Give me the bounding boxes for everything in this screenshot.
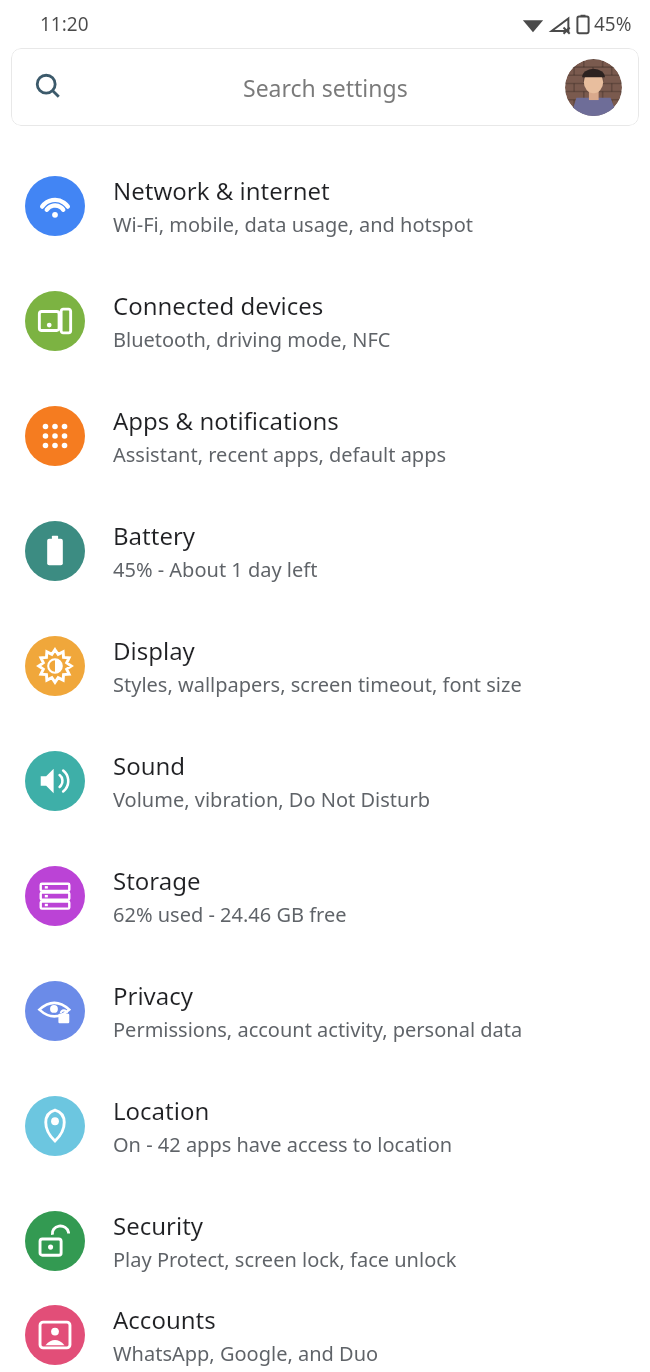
staticText: Wi-Fi, mobile, data usage, and hotspot <box>113 211 473 238</box>
staticText: Display <box>113 634 195 667</box>
staticText: Location <box>113 1094 210 1127</box>
staticText: Storage <box>113 864 201 897</box>
button[interactable]: Sound <box>0 723 650 838</box>
button[interactable]: Apps & notifications <box>0 378 650 493</box>
staticText: Sound <box>113 749 186 782</box>
staticText: Play Protect, screen lock, face unlock <box>113 1246 457 1273</box>
staticText: Search settings <box>243 72 408 103</box>
button[interactable]: Network & internet <box>0 148 650 263</box>
staticText: Bluetooth, driving mode, NFC <box>113 326 391 353</box>
button[interactable]: Connected devices <box>0 263 650 378</box>
button[interactable]: Location <box>0 1068 650 1183</box>
staticText: 45% - About 1 day left <box>113 556 318 583</box>
button[interactable]: Battery <box>0 493 650 608</box>
button[interactable]: Privacy <box>0 953 650 1068</box>
button[interactable]: Accounts <box>0 1298 650 1372</box>
button[interactable]: Search <box>11 48 639 126</box>
staticText: Connected devices <box>113 289 324 322</box>
button[interactable]: Security <box>0 1183 650 1298</box>
staticText: 62% used - 24.46 GB free <box>113 901 347 928</box>
staticText: Volume, vibration, Do Not Disturb <box>113 786 430 813</box>
staticText: 45% <box>594 11 632 37</box>
staticText: Apps & notifications <box>113 404 339 437</box>
staticText: Network & internet <box>113 174 330 207</box>
staticText: Battery <box>113 519 196 552</box>
other: Search <box>35 73 63 101</box>
button[interactable]: Display <box>0 608 650 723</box>
staticText: WhatsApp, Google, and Duo <box>113 1340 379 1367</box>
staticText: On - 42 apps have access to location <box>113 1131 453 1158</box>
button[interactable]: Account <box>565 59 622 116</box>
staticText: Permissions, account activity, personal … <box>113 1016 523 1043</box>
staticText: Assistant, recent apps, default apps <box>113 441 447 468</box>
staticText: Privacy <box>113 979 194 1012</box>
staticText: Accounts <box>113 1303 216 1336</box>
staticText: 11:20 <box>40 11 89 37</box>
staticText: Styles, wallpapers, screen timeout, font… <box>113 671 522 698</box>
staticText: Security <box>113 1209 204 1242</box>
button[interactable]: Storage <box>0 838 650 953</box>
